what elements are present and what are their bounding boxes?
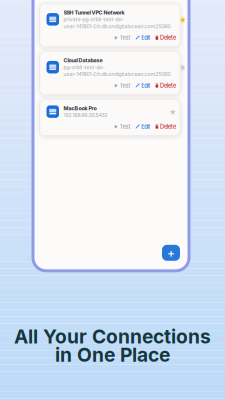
button[interactable]: Favorite	[170, 108, 176, 115]
button[interactable]: Delete	[150, 34, 176, 41]
button[interactable]: Test	[109, 123, 131, 130]
staticText: All Your Connections	[14, 325, 211, 348]
button[interactable]: Edit	[131, 123, 150, 130]
button[interactable]: Add connection	[162, 245, 180, 261]
staticText: private-pg-orbit-test-do-	[63, 16, 123, 23]
button[interactable]: Test	[109, 82, 131, 89]
button[interactable]: Favorite	[179, 16, 186, 23]
staticText: in One Place	[55, 343, 170, 366]
staticText: SSH Tunnel VPC Network	[63, 9, 124, 16]
staticText: Test	[120, 123, 131, 130]
staticText: Delete	[160, 34, 176, 41]
button[interactable]: Delete	[150, 123, 176, 130]
staticText: Delete	[160, 123, 176, 130]
staticText: Edit	[141, 82, 150, 89]
staticText: MacBook Pro	[63, 105, 96, 111]
staticText: pg-orbit-test-do-	[63, 64, 104, 70]
staticText: Test	[120, 34, 131, 41]
button[interactable]: Edit	[131, 82, 150, 89]
button[interactable]: Delete	[150, 82, 176, 89]
button[interactable]: Test	[109, 34, 131, 41]
staticText: user-141801-0.h.db.ondigitalocean.com:25…	[63, 71, 170, 77]
staticText: +	[167, 245, 175, 260]
staticText: Cloud Database	[63, 57, 102, 64]
staticText: Test	[120, 82, 131, 89]
staticText: Delete	[160, 82, 176, 89]
button[interactable]: Edit	[131, 34, 150, 41]
button[interactable]: Favorite	[179, 63, 186, 71]
staticText: Edit	[141, 123, 150, 130]
staticText: 192.168.86.30.5432	[63, 112, 107, 118]
staticText: user-141801-0.h.db.ondigitalocean.com:25…	[63, 23, 170, 29]
staticText: Edit	[141, 34, 150, 41]
